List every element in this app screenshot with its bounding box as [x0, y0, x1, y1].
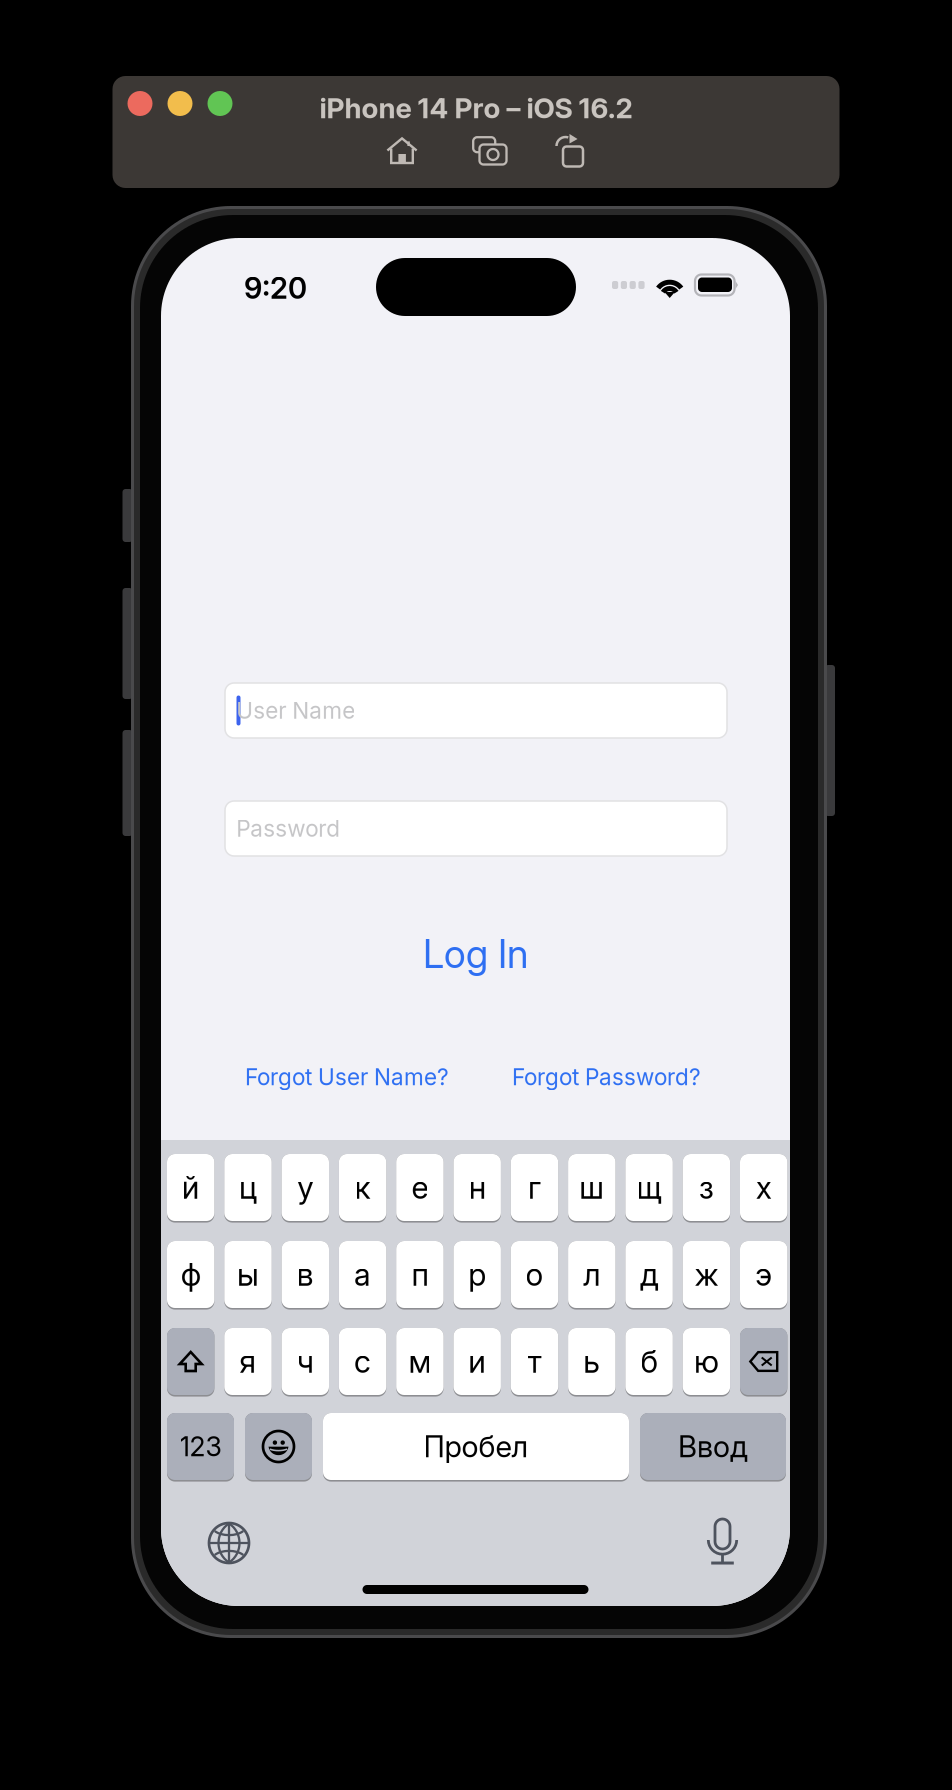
staticText: ч — [297, 1343, 314, 1380]
staticText: у — [297, 1169, 313, 1206]
button[interactable]: д — [625, 1241, 673, 1308]
button[interactable]: щ — [625, 1154, 673, 1221]
button[interactable]: я — [224, 1328, 272, 1395]
staticText: э — [755, 1256, 772, 1293]
staticText: д — [640, 1256, 658, 1293]
button[interactable]: Пробел — [323, 1413, 629, 1480]
staticText: Forgot User Name? — [245, 1063, 449, 1091]
staticText: л — [583, 1256, 600, 1293]
staticText: б — [641, 1343, 658, 1380]
button[interactable]: г — [511, 1154, 558, 1221]
staticText: ш — [579, 1169, 604, 1206]
staticText: р — [468, 1256, 486, 1293]
button[interactable]: й — [167, 1154, 214, 1221]
staticText: 9:20 — [244, 270, 307, 306]
staticText: з — [699, 1169, 714, 1206]
button[interactable]: ю — [683, 1328, 730, 1395]
button[interactable]: т — [511, 1328, 558, 1395]
button[interactable]: Forgot Password? — [500, 1056, 712, 1098]
staticText: ь — [583, 1343, 600, 1380]
staticText: г — [528, 1169, 541, 1206]
button[interactable]: Rotate — [535, 129, 601, 173]
staticText: т — [527, 1343, 541, 1380]
staticText: п — [411, 1256, 428, 1293]
button[interactable]: Home — [369, 129, 435, 173]
button[interactable]: м — [396, 1328, 444, 1395]
staticText: Ввод — [678, 1429, 748, 1464]
button[interactable]: Forgot User Name? — [241, 1056, 453, 1098]
button[interactable]: Shift — [167, 1328, 214, 1395]
button[interactable]: Delete — [740, 1328, 787, 1395]
staticText: ю — [694, 1343, 719, 1380]
button[interactable]: ф — [167, 1241, 214, 1308]
staticText: о — [525, 1256, 543, 1293]
button[interactable]: е — [396, 1154, 444, 1221]
button[interactable]: п — [396, 1241, 444, 1308]
staticText: iPhone 14 Pro – iOS 16.2 — [319, 91, 632, 125]
staticText: щ — [637, 1169, 662, 1206]
staticText: с — [354, 1343, 371, 1380]
staticText: ы — [237, 1256, 259, 1293]
button[interactable]: ж — [683, 1241, 730, 1308]
button[interactable]: ш — [568, 1154, 615, 1221]
staticText: й — [182, 1169, 200, 1206]
staticText: е — [411, 1169, 428, 1206]
staticText: Log In — [423, 931, 528, 977]
staticText: х — [756, 1169, 772, 1206]
button[interactable]: Password — [225, 801, 727, 856]
staticText: и — [468, 1343, 486, 1380]
button[interactable]: Close — [127, 91, 152, 116]
button[interactable]: User Name — [225, 683, 727, 738]
button[interactable]: ы — [224, 1241, 272, 1308]
button[interactable]: Next keyboard — [194, 1508, 264, 1578]
button[interactable]: л — [568, 1241, 615, 1308]
button[interactable]: и — [453, 1328, 501, 1395]
staticText: Password — [236, 815, 340, 842]
staticText: Пробел — [423, 1429, 528, 1464]
button[interactable]: з — [683, 1154, 730, 1221]
button[interactable]: р — [453, 1241, 501, 1308]
staticText: ж — [694, 1256, 718, 1293]
staticText: ф — [181, 1256, 201, 1293]
button[interactable]: Log In — [161, 926, 790, 982]
button[interactable]: Minimize — [167, 91, 192, 116]
button[interactable]: о — [511, 1241, 558, 1308]
button[interactable]: в — [282, 1241, 329, 1308]
button[interactable]: у — [282, 1154, 329, 1221]
staticText: я — [239, 1343, 256, 1380]
staticText: а — [354, 1256, 371, 1293]
button[interactable]: к — [339, 1154, 386, 1221]
button[interactable]: ч — [282, 1328, 329, 1395]
button[interactable]: Dictate — [687, 1507, 757, 1577]
button[interactable]: Zoom — [207, 91, 232, 116]
staticText: ц — [239, 1169, 257, 1206]
staticText: н — [469, 1169, 486, 1206]
staticText: Forgot Password? — [512, 1063, 701, 1091]
button[interactable]: а — [339, 1241, 386, 1308]
staticText: в — [297, 1256, 314, 1293]
button[interactable]: б — [625, 1328, 673, 1395]
button[interactable]: э — [740, 1241, 787, 1308]
button[interactable]: н — [453, 1154, 501, 1221]
button[interactable]: ь — [568, 1328, 615, 1395]
button[interactable]: х — [740, 1154, 787, 1221]
button[interactable]: ц — [224, 1154, 272, 1221]
button[interactable]: 123 — [167, 1413, 234, 1480]
button[interactable]: с — [339, 1328, 386, 1395]
button[interactable]: Emoji — [245, 1413, 312, 1480]
staticText: User Name — [236, 697, 355, 724]
staticText: к — [355, 1169, 371, 1206]
staticText: м — [408, 1343, 431, 1380]
button[interactable]: Ввод — [640, 1413, 786, 1480]
staticText: 123 — [179, 1430, 221, 1463]
button[interactable]: Screenshot — [457, 129, 523, 173]
